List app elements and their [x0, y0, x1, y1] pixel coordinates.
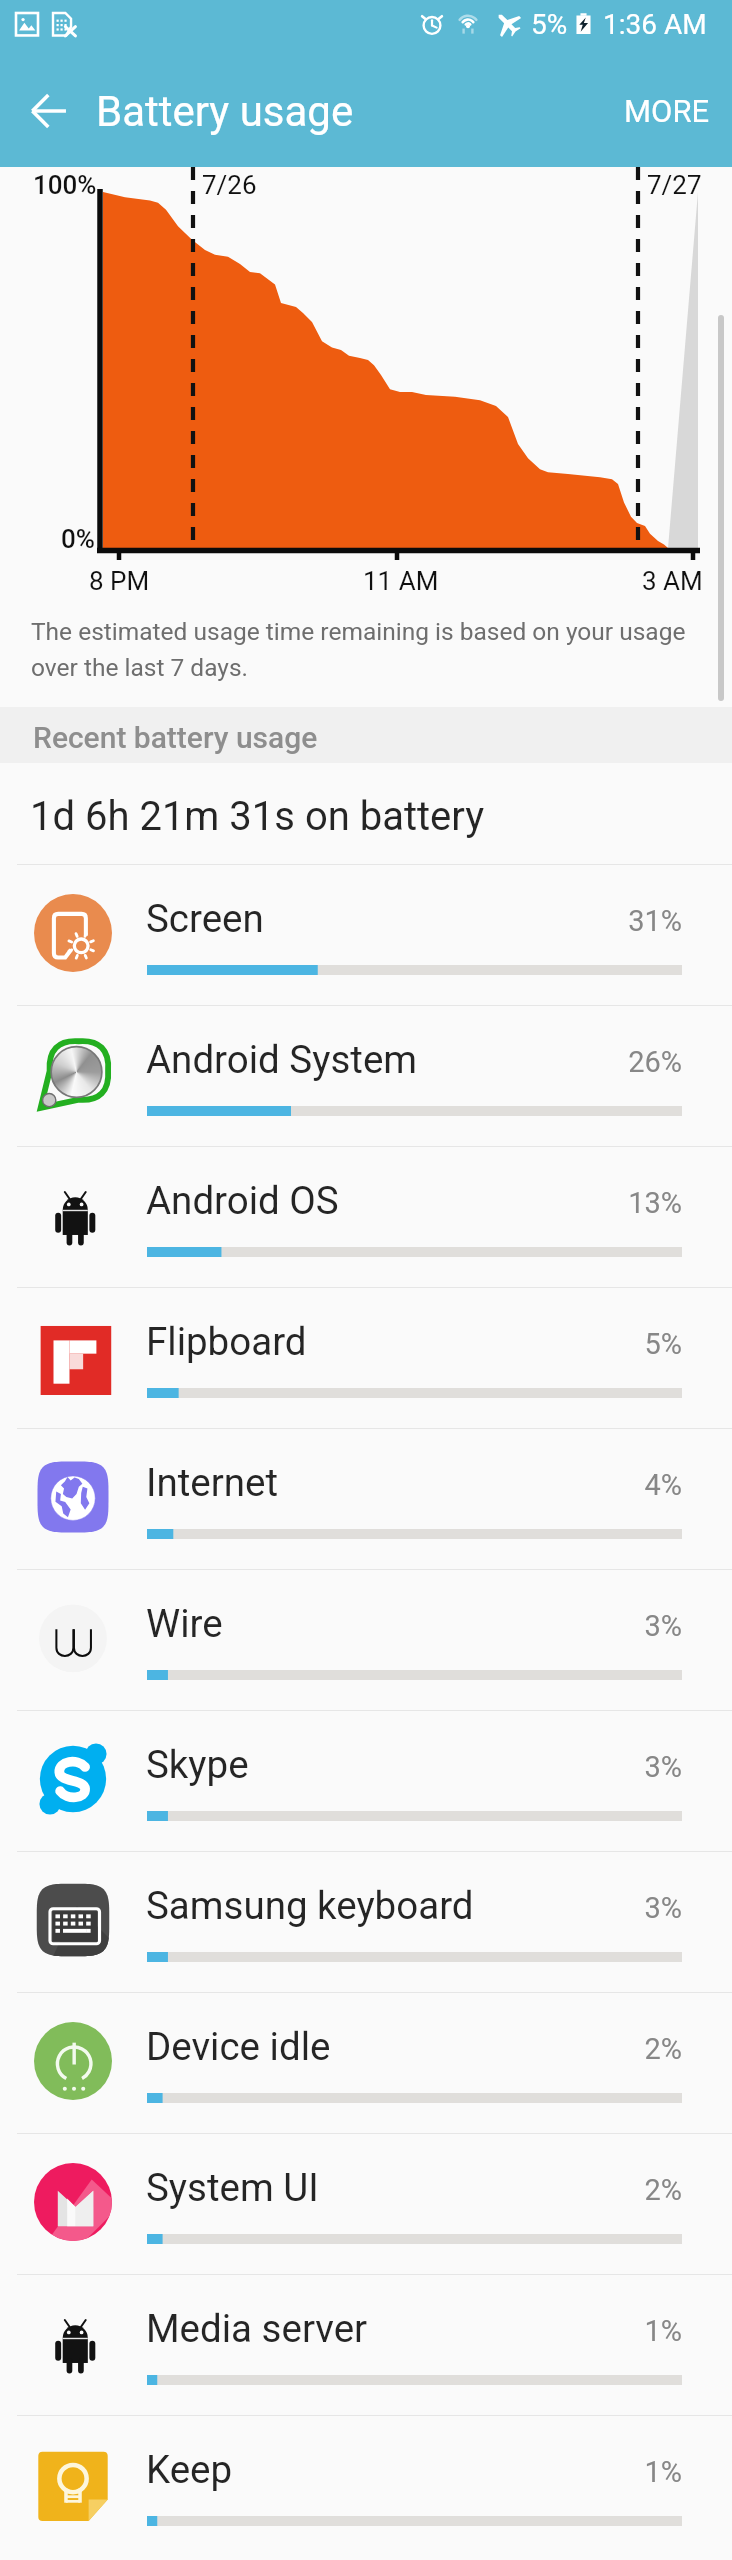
staticText: System UI	[146, 2165, 319, 2210]
staticText: 11 AM	[363, 566, 439, 596]
staticText: Samsung keyboard	[146, 1883, 474, 1928]
staticText: 13%	[0, 1186, 682, 1220]
staticText: The estimated usage time remaining is ba…	[31, 617, 699, 681]
staticText: 4%	[0, 1468, 682, 1502]
staticText: Android System	[146, 1037, 418, 1082]
staticText: 100%	[33, 170, 97, 200]
staticText: 31%	[0, 904, 682, 938]
button[interactable]: Samsung keyboard	[0, 1852, 732, 1992]
staticText: 2%	[0, 2173, 682, 2207]
staticText: Device idle	[146, 2024, 331, 2069]
staticText: Flipboard	[146, 1319, 307, 1364]
button[interactable]: System UI	[0, 2134, 732, 2274]
button[interactable]: Android System	[0, 1006, 732, 1146]
staticText: Android OS	[146, 1178, 339, 1223]
staticText: 3%	[0, 1750, 682, 1784]
staticText: 3%	[0, 1891, 682, 1925]
staticText: 1%	[0, 2455, 682, 2489]
staticText: Internet	[146, 1460, 279, 1505]
staticText: 3%	[0, 1609, 682, 1643]
staticText: 1d 6h 21m 31s on battery	[30, 793, 485, 840]
button[interactable]: Wire	[0, 1570, 732, 1710]
button[interactable]: Keep	[0, 2416, 732, 2556]
staticText: 2%	[0, 2032, 682, 2066]
staticText: Recent battery usage	[33, 720, 318, 755]
staticText: 8 PM	[89, 566, 150, 596]
button[interactable]: MORE	[602, 73, 732, 149]
staticText: Skype	[146, 1742, 249, 1787]
staticText: 5%	[0, 1327, 682, 1361]
staticText: MORE	[624, 93, 710, 129]
staticText: Wire	[146, 1601, 223, 1646]
button[interactable]: Media server	[0, 2275, 732, 2415]
staticText: 0%	[61, 524, 95, 554]
staticText: 3 AM	[642, 566, 703, 596]
staticText: Media server	[146, 2306, 368, 2351]
staticText: 1%	[0, 2314, 682, 2348]
button[interactable]: Navigate up	[22, 83, 78, 139]
staticText: 1:36 AM	[603, 8, 707, 41]
button[interactable]: Flipboard	[0, 1288, 732, 1428]
staticText: 7/27	[647, 170, 702, 200]
button[interactable]: Device idle	[0, 1993, 732, 2133]
button[interactable]: Android OS	[0, 1147, 732, 1287]
staticText: 26%	[0, 1045, 682, 1079]
staticText: 5%	[531, 8, 568, 41]
staticText: Screen	[146, 896, 264, 941]
staticText: Battery usage	[96, 87, 354, 136]
button[interactable]: Screen	[0, 865, 732, 1005]
button[interactable]: Skype	[0, 1711, 732, 1851]
button[interactable]: Internet	[0, 1429, 732, 1569]
staticText: Keep	[146, 2447, 233, 2492]
staticText: 7/26	[202, 170, 257, 200]
